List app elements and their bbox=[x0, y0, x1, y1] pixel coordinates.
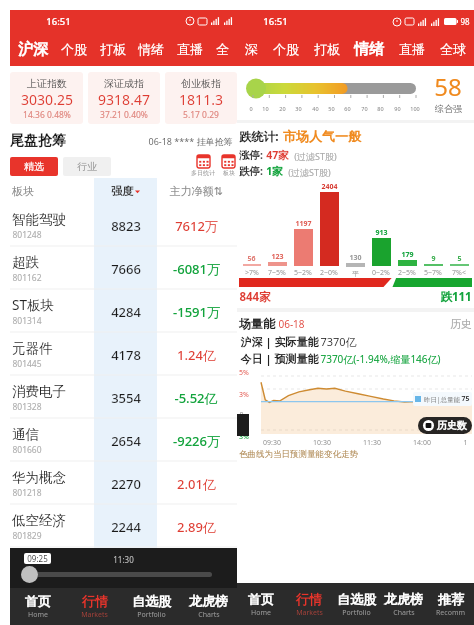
staticText: 1811.3 bbox=[179, 90, 223, 109]
staticText: 60 bbox=[344, 105, 351, 112]
staticText: 50 bbox=[328, 105, 335, 112]
button[interactable]: 首页 bbox=[237, 583, 285, 625]
staticText: 超跌 bbox=[12, 254, 39, 271]
staticText: 06-18 **** 挂单抢筹 bbox=[148, 135, 233, 147]
button[interactable]: 情绪 bbox=[352, 40, 386, 59]
staticText: 色曲线为当日预测量能变化走势 bbox=[239, 449, 358, 460]
button[interactable]: 行情 bbox=[285, 583, 333, 625]
button[interactable]: 直播 bbox=[175, 41, 205, 57]
staticText: 40 bbox=[312, 105, 319, 112]
button[interactable]: 多日统计 bbox=[191, 155, 215, 177]
button[interactable]: 上证指数 bbox=[10, 72, 83, 124]
button[interactable]: 历史数 bbox=[418, 417, 472, 434]
staticText: 801314 bbox=[12, 315, 42, 327]
staticText: 7%< bbox=[452, 268, 466, 278]
staticText: 情绪 bbox=[354, 40, 384, 59]
staticText: 20 bbox=[279, 105, 286, 112]
button[interactable]: 消费电子 bbox=[10, 376, 237, 419]
button[interactable]: ST板块 bbox=[10, 290, 237, 333]
staticText: 板块 bbox=[223, 169, 235, 177]
button[interactable]: 首页 bbox=[10, 588, 66, 625]
staticText: 9 bbox=[431, 254, 436, 264]
staticText: 全 bbox=[216, 41, 229, 57]
button[interactable]: 推荐 bbox=[427, 583, 474, 625]
button[interactable]: 龙虎榜 bbox=[180, 588, 237, 625]
staticText: 4284 bbox=[111, 303, 141, 321]
staticText: 7666 bbox=[111, 260, 141, 278]
button[interactable]: 行情 bbox=[66, 588, 123, 625]
staticText: 1 bbox=[463, 438, 468, 448]
staticText: 1197 bbox=[295, 219, 312, 229]
button[interactable]: 历史 bbox=[450, 317, 472, 331]
button[interactable]: 自选股 bbox=[123, 588, 180, 625]
staticText: 3030.25 bbox=[21, 90, 73, 109]
button[interactable]: 低空经济 bbox=[10, 505, 237, 548]
button[interactable]: 龙虎榜 bbox=[380, 583, 427, 625]
staticText: 主力净额⇅ bbox=[169, 184, 223, 198]
staticText: -1591万 bbox=[173, 303, 220, 321]
button[interactable]: 华为概念 bbox=[10, 462, 237, 505]
button[interactable]: 直播 bbox=[397, 41, 427, 57]
button[interactable]: 打板 bbox=[312, 41, 342, 57]
staticText: 打板 bbox=[314, 41, 340, 57]
staticText: 5~7% bbox=[424, 268, 442, 278]
button[interactable]: 超跌 bbox=[10, 247, 237, 290]
staticText: 3% bbox=[239, 432, 249, 442]
button[interactable]: 通信 bbox=[10, 419, 237, 462]
button[interactable]: 情绪 bbox=[136, 41, 166, 57]
staticText: 情绪 bbox=[138, 41, 164, 57]
staticText: 行业 bbox=[77, 160, 97, 173]
staticText: 深证成指 bbox=[104, 77, 144, 90]
staticText: 7~5% bbox=[268, 268, 286, 278]
staticText: 14.36 0.48% bbox=[23, 109, 71, 119]
button[interactable]: 创业板指 bbox=[165, 72, 237, 124]
button[interactable]: 精选 bbox=[10, 157, 58, 176]
staticText: 全球 bbox=[440, 41, 466, 57]
staticText: 2244 bbox=[111, 518, 141, 536]
staticText: 801248 bbox=[12, 229, 42, 241]
staticText: 3% bbox=[239, 390, 249, 400]
staticText: 10:30 bbox=[313, 438, 331, 448]
staticText: Markets bbox=[296, 608, 323, 618]
staticText: 09:30 bbox=[263, 438, 281, 448]
staticText: 801445 bbox=[12, 358, 42, 370]
button[interactable]: 全球 bbox=[438, 41, 468, 57]
staticText: 首页 bbox=[25, 593, 51, 609]
staticText: 7612万 bbox=[175, 217, 218, 235]
button[interactable]: 主力净额⇅ bbox=[157, 178, 235, 204]
staticText: 16:51 bbox=[263, 15, 288, 28]
staticText: Home bbox=[28, 610, 48, 620]
staticText: 0 bbox=[239, 410, 244, 420]
staticText: 5% bbox=[239, 368, 249, 378]
button[interactable]: Play bbox=[21, 566, 38, 583]
button[interactable]: 全 bbox=[214, 41, 231, 57]
staticText: 1.24亿 bbox=[177, 346, 216, 364]
staticText: 沪深 | 实际量能 bbox=[239, 334, 320, 349]
staticText: 7370亿 bbox=[320, 334, 357, 349]
button[interactable]: 强度 bbox=[94, 178, 157, 204]
button[interactable]: 个股 bbox=[271, 41, 301, 57]
button[interactable]: 深证成指 bbox=[88, 72, 160, 124]
staticText: 14:00 bbox=[413, 438, 431, 448]
staticText: 今日 | 预测量能 bbox=[239, 351, 320, 366]
staticText: 2270 bbox=[111, 475, 141, 493]
button[interactable]: 自选股 bbox=[333, 583, 380, 625]
staticText: 98 bbox=[460, 16, 470, 27]
staticText: 板块 bbox=[12, 184, 34, 198]
staticText: 06-18 bbox=[278, 317, 305, 331]
staticText: 创业板指 bbox=[181, 77, 221, 90]
button[interactable]: 打板 bbox=[98, 41, 128, 57]
staticText: 沪深 bbox=[18, 40, 48, 59]
staticText: Portfolio bbox=[137, 610, 166, 620]
button[interactable]: 深 bbox=[243, 41, 260, 57]
staticText: 直播 bbox=[399, 41, 425, 57]
staticText: 1家 bbox=[266, 164, 283, 178]
staticText: 801328 bbox=[12, 401, 42, 413]
button[interactable]: 元器件 bbox=[10, 333, 237, 376]
button[interactable]: 沪深 bbox=[16, 40, 50, 59]
button[interactable]: 板块 bbox=[222, 155, 235, 177]
button[interactable]: 个股 bbox=[59, 41, 89, 57]
button[interactable]: 行业 bbox=[63, 157, 111, 176]
staticText: Charts bbox=[198, 610, 220, 620]
button[interactable]: 智能驾驶 bbox=[10, 204, 237, 247]
